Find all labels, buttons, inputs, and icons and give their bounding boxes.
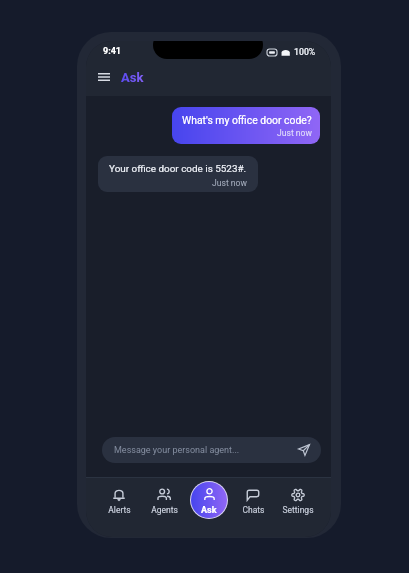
staticText: Agents [151,505,178,515]
staticText: What's my office door code? [182,114,312,126]
staticText: Alerts [108,505,131,515]
staticText: Ask [121,70,144,85]
button[interactable]: Alerts [98,477,140,537]
other: Send [297,443,311,457]
button[interactable]: Menu [96,69,112,85]
staticText: 9:41 [103,46,122,57]
button[interactable]: Agents [143,477,185,537]
staticText: Ask [201,505,217,516]
button[interactable]: Message your personal agent... [102,437,321,463]
button[interactable]: Settings [277,477,319,537]
button[interactable]: Ask [191,482,227,518]
staticText: Just now [212,178,247,188]
staticText: Your office door code is 5523#. [109,163,247,175]
staticText: Settings [282,505,314,515]
staticText: 100% [294,47,316,57]
staticText: Just now [277,128,312,138]
button[interactable]: What's my office door code? [172,107,320,144]
staticText: Message your personal agent... [114,445,240,456]
staticText: Chats [242,505,265,515]
button[interactable]: Your office door code is 5523#. [98,156,258,192]
button[interactable]: Chats [232,477,274,537]
